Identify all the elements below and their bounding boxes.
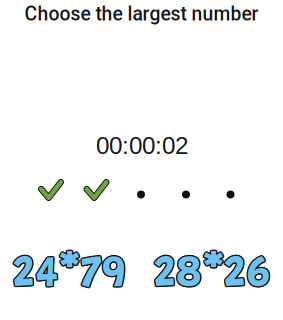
staticText: 28*26	[155, 255, 272, 299]
staticText: 28*26	[154, 253, 271, 297]
staticText: 24*79	[12, 255, 124, 299]
staticText: 28*26	[154, 254, 271, 298]
staticText: 24*79	[12, 254, 124, 298]
staticText: 28*26	[154, 255, 271, 299]
staticText: 24*79	[13, 253, 125, 297]
staticText: Choose the largest number	[24, 3, 258, 25]
staticText: 28*26	[153, 253, 270, 297]
staticText: 28*26	[153, 254, 270, 298]
staticText: 24*79	[14, 255, 126, 299]
button[interactable]: 24*79	[13, 254, 125, 298]
staticText: 24*79	[13, 255, 125, 299]
button[interactable]: 28*26	[154, 254, 271, 298]
staticText: 28*26	[155, 253, 272, 297]
staticText: 24*79	[14, 253, 126, 297]
staticText: 00:00:02	[96, 132, 188, 159]
staticText: 28*26	[155, 254, 272, 298]
staticText: 24*79	[14, 254, 126, 298]
staticText: 24*79	[13, 254, 125, 298]
staticText: 24*79	[12, 253, 124, 297]
staticText: 28*26	[153, 255, 270, 299]
